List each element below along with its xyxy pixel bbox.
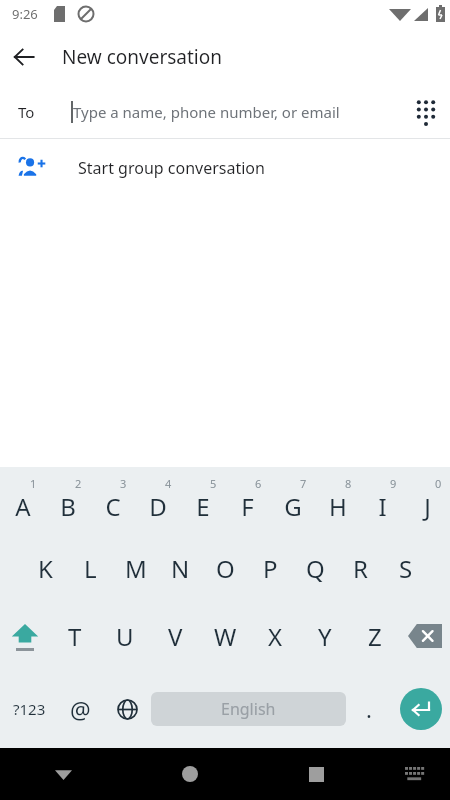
button[interactable]: D xyxy=(135,467,180,535)
button[interactable]: Z xyxy=(350,602,400,670)
button[interactable]: Start group conversation xyxy=(0,139,450,197)
button[interactable]: L xyxy=(68,535,113,602)
button[interactable]: N xyxy=(158,535,203,602)
button[interactable]: R xyxy=(338,535,383,602)
staticText: English xyxy=(221,698,276,720)
button[interactable]: M xyxy=(113,535,158,602)
button[interactable]: C xyxy=(90,467,135,535)
staticText: F xyxy=(241,490,254,523)
staticText: 2 xyxy=(75,476,82,491)
button[interactable]: Back xyxy=(0,33,48,81)
button[interactable]: T xyxy=(50,602,100,670)
button[interactable]: G xyxy=(270,467,315,535)
staticText: P xyxy=(263,552,278,585)
staticText: @ xyxy=(70,694,91,725)
button[interactable]: E xyxy=(180,467,225,535)
button[interactable]: Hide keyboard xyxy=(0,748,126,800)
staticText: L xyxy=(84,552,97,585)
button[interactable]: Change language xyxy=(103,670,151,748)
button[interactable]: Recents xyxy=(253,748,380,800)
staticText: 9 xyxy=(390,476,397,491)
button[interactable] xyxy=(400,688,442,730)
staticText: J xyxy=(424,490,431,523)
staticText: B xyxy=(60,490,76,523)
button[interactable]: J xyxy=(405,467,450,535)
button[interactable]: Switch keyboard xyxy=(380,748,450,800)
staticText: 1 xyxy=(30,476,37,491)
button[interactable]: V xyxy=(150,602,200,670)
staticText: M xyxy=(125,552,147,585)
staticText: I xyxy=(378,490,387,523)
staticText: U xyxy=(116,620,134,653)
button[interactable]: X xyxy=(250,602,300,670)
staticText: ?123 xyxy=(13,699,46,719)
button[interactable]: . xyxy=(346,670,392,748)
staticText: D xyxy=(149,490,167,523)
staticText: A xyxy=(15,490,31,523)
staticText: 3 xyxy=(120,476,127,491)
button[interactable]: F xyxy=(225,467,270,535)
staticText: E xyxy=(196,490,210,523)
button[interactable]: Q xyxy=(293,535,338,602)
staticText: C xyxy=(105,490,121,523)
staticText: V xyxy=(168,620,183,653)
button[interactable]: A xyxy=(0,467,45,535)
button[interactable]: Home xyxy=(126,748,253,800)
button[interactable]: Dialpad xyxy=(402,88,450,136)
staticText: N xyxy=(171,552,190,585)
staticText: 4 xyxy=(165,476,172,491)
staticText: H xyxy=(329,490,347,523)
staticText: Z xyxy=(368,620,382,653)
button[interactable]: B xyxy=(45,467,90,535)
staticText: Y xyxy=(318,620,332,653)
staticText: T xyxy=(68,620,82,653)
button[interactable]: P xyxy=(248,535,293,602)
staticText: R xyxy=(353,552,368,585)
staticText: 6 xyxy=(255,476,262,491)
staticText: 7 xyxy=(300,476,307,491)
button[interactable]: @ xyxy=(58,670,103,748)
button[interactable]: U xyxy=(100,602,150,670)
staticText: New conversation xyxy=(62,44,222,70)
button[interactable]: ?123 xyxy=(0,670,58,748)
staticText: Start group conversation xyxy=(78,157,265,179)
other: Enter xyxy=(392,670,450,748)
staticText: S xyxy=(399,552,413,585)
staticText: G xyxy=(284,490,302,523)
button[interactable]: Y xyxy=(300,602,350,670)
staticText: Type a name, phone number, or email xyxy=(73,102,340,122)
button[interactable]: I xyxy=(360,467,405,535)
staticText: . xyxy=(366,694,372,724)
button[interactable]: H xyxy=(315,467,360,535)
button[interactable]: W xyxy=(200,602,250,670)
staticText: Q xyxy=(306,552,325,585)
staticText: To xyxy=(18,102,35,122)
staticText: O xyxy=(216,552,235,585)
staticText: 9:26 xyxy=(12,5,38,23)
staticText: K xyxy=(38,552,53,585)
staticText: 8 xyxy=(345,476,352,491)
button[interactable]: O xyxy=(203,535,248,602)
staticText: 0 xyxy=(435,476,442,491)
button[interactable]: Shift xyxy=(0,602,50,670)
staticText: W xyxy=(214,620,237,653)
button[interactable]: S xyxy=(383,535,428,602)
staticText: 5 xyxy=(210,476,217,491)
button[interactable]: English xyxy=(151,692,346,726)
staticText: X xyxy=(268,620,283,653)
button[interactable]: K xyxy=(22,535,68,602)
button[interactable]: Backspace xyxy=(400,602,450,670)
